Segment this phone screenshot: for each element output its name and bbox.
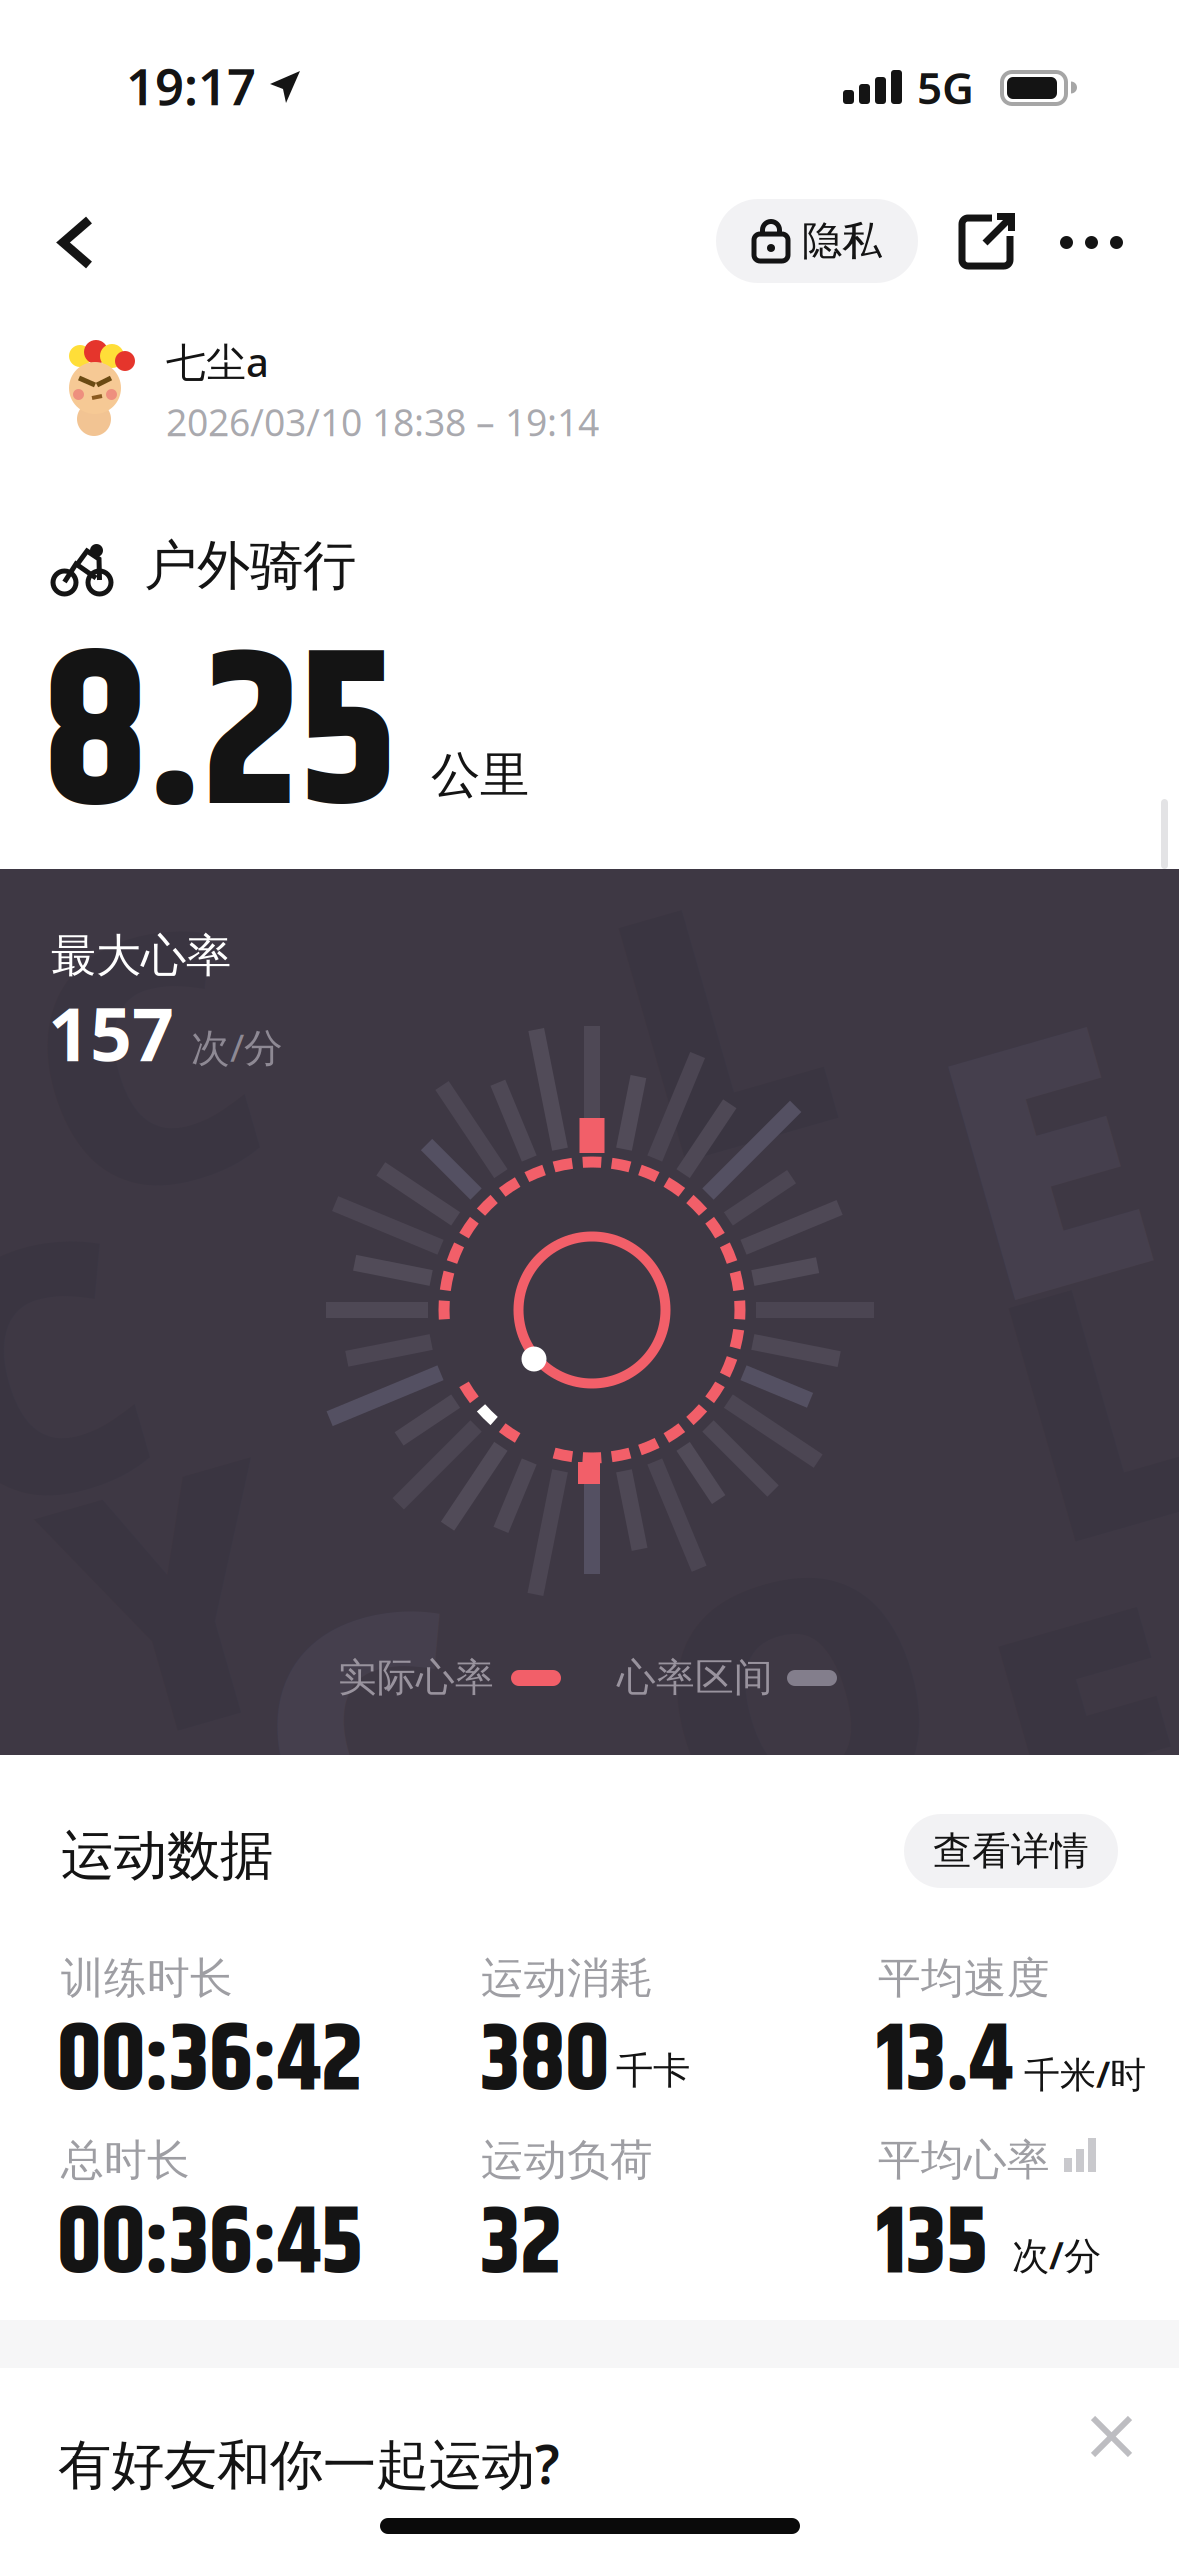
staticText: 00:36:42 [57, 1990, 363, 2135]
staticText: 8.25 [43, 572, 396, 908]
staticText: 13.4 [876, 1990, 1013, 2135]
staticText: 千米/时 [1024, 2050, 1146, 2098]
button[interactable]: More [1048, 224, 1135, 261]
staticText: 总时长 [61, 2134, 190, 2186]
staticText: 查看详情 [933, 1827, 1089, 1875]
staticText: Y [60, 1369, 286, 1820]
staticText: 心率区间 [617, 1654, 773, 1701]
staticText: C [30, 829, 251, 1280]
button[interactable]: 查看详情 [904, 1814, 1118, 1888]
staticText: 隐私 [802, 216, 882, 265]
staticText: 运动负荷 [481, 2134, 653, 2186]
button[interactable]: Share [950, 206, 1022, 278]
staticText: 19:17 [126, 52, 256, 119]
staticText: 次/分 [191, 1021, 283, 1072]
staticText: 次/分 [1012, 2230, 1101, 2280]
staticText: 七尘a [166, 335, 269, 388]
staticText: 有好友和你一起运动? [58, 2428, 560, 2499]
staticText: 实际心率 [338, 1654, 494, 1701]
staticText: 最大心率 [51, 928, 231, 984]
staticText: 平均心率 [878, 2134, 1050, 2186]
staticText: L [1010, 1169, 1179, 1620]
staticText: 训练时长 [61, 1952, 233, 2004]
staticText: 运动数据 [61, 1823, 273, 1888]
staticText: 135 [876, 2173, 988, 2318]
staticText: 00:36:45 [57, 2173, 363, 2318]
button[interactable]: 有好友和你一起运动? [58, 2428, 560, 2499]
staticText: 运动消耗 [481, 1952, 653, 2004]
staticText: 平均速度 [878, 1952, 1050, 2004]
button[interactable]: Back [40, 206, 112, 279]
staticText: E [1000, 1509, 1179, 1960]
staticText: 千卡 [616, 2048, 690, 2094]
staticText: L [620, 789, 818, 1240]
staticText: 5G [917, 58, 974, 116]
staticText: C [260, 1509, 481, 1960]
staticText: 2026/03/10 18:38 – 19:14 [166, 397, 599, 447]
staticText: 户外骑行 [144, 533, 356, 598]
staticText: 380 [480, 1990, 609, 2135]
staticText: E [950, 929, 1137, 1380]
staticText: 公里 [431, 745, 529, 806]
staticText: O [660, 1469, 931, 1920]
button[interactable]: 隐私 [716, 199, 918, 283]
button[interactable]: Close [1083, 2408, 1140, 2465]
staticText: 157 [48, 984, 174, 1081]
staticText: 32 [480, 2173, 562, 2318]
